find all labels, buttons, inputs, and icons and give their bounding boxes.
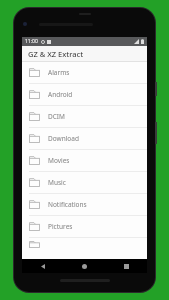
staticText: 11:00 [25, 38, 38, 45]
button[interactable]: Pictures [22, 216, 147, 238]
button[interactable]: Back [22, 259, 63, 273]
staticText: Notifications [48, 200, 87, 209]
staticText: Music [48, 178, 66, 187]
staticText: GZ & XZ Extract [28, 49, 84, 59]
staticText: Pictures [48, 222, 73, 231]
button[interactable]: Recent apps [105, 259, 147, 273]
button[interactable]: Home [63, 259, 105, 273]
staticText: Alarms [48, 68, 70, 77]
button[interactable]: Android [22, 84, 147, 106]
button[interactable]: Music [22, 172, 147, 194]
button[interactable]: Download [22, 128, 147, 150]
button[interactable]: DCIM [22, 106, 147, 128]
staticText: Movies [48, 156, 70, 165]
button[interactable]: Alarms [22, 62, 147, 84]
staticText: DCIM [48, 112, 65, 121]
button[interactable] [22, 238, 147, 245]
staticText: Download [48, 134, 79, 143]
button[interactable]: Movies [22, 150, 147, 172]
button[interactable]: Notifications [22, 194, 147, 216]
staticText: Android [48, 90, 73, 99]
